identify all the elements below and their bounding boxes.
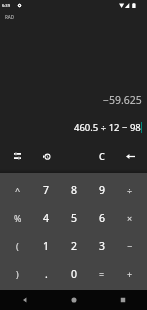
button[interactable]: × — [116, 204, 144, 232]
staticText: 460.5 ÷ 12 − 98 — [74, 121, 141, 134]
button[interactable]: 3 — [88, 232, 116, 260]
button[interactable]: 8 — [60, 175, 88, 204]
staticText: C — [99, 150, 105, 162]
button[interactable]: Recent apps — [98, 290, 147, 310]
button[interactable]: 9 — [88, 175, 116, 204]
staticText: RAD — [5, 14, 15, 20]
button[interactable]: ÷ — [116, 175, 144, 204]
button[interactable]: − — [116, 232, 144, 260]
button[interactable]: 1 — [32, 232, 60, 260]
staticText: . — [45, 267, 48, 281]
staticText: ^ — [15, 184, 21, 196]
button[interactable]: + — [116, 260, 144, 288]
staticText: = — [99, 268, 105, 280]
staticText: 5 — [71, 211, 78, 225]
staticText: 6:39 — [2, 3, 10, 8]
button[interactable]: Home — [49, 290, 98, 310]
button[interactable]: Scientific mode — [3, 144, 32, 168]
staticText: % — [14, 212, 22, 224]
button[interactable]: 5 — [60, 204, 88, 232]
button[interactable]: ( — [3, 232, 32, 260]
staticText: −59.625 — [103, 93, 142, 107]
staticText: ÷ — [127, 184, 133, 196]
button[interactable]: 4 — [32, 204, 60, 232]
button[interactable]: 0 — [60, 260, 88, 288]
button[interactable]: % — [3, 204, 32, 232]
button[interactable]: Back — [0, 290, 49, 310]
button[interactable]: C — [88, 144, 116, 168]
staticText: ( — [16, 240, 19, 252]
button[interactable]: 7 — [32, 175, 60, 204]
button[interactable]: History — [32, 144, 60, 168]
staticText: − — [127, 240, 133, 252]
staticText: 9 — [99, 183, 106, 197]
staticText: 6 — [99, 211, 106, 225]
staticText: + — [127, 268, 133, 280]
button[interactable]: ^ — [3, 175, 32, 204]
staticText: 4 — [43, 211, 50, 225]
button[interactable]: = — [88, 260, 116, 288]
staticText: ) — [16, 268, 19, 280]
button[interactable]: 6 — [88, 204, 116, 232]
staticText: 1 — [43, 239, 50, 253]
staticText: 8 — [71, 183, 78, 197]
staticText: 3 — [99, 239, 106, 253]
staticText: 0 — [71, 267, 78, 281]
staticText: 2 — [71, 239, 78, 253]
button[interactable]: . — [32, 260, 60, 288]
staticText: × — [127, 212, 133, 224]
button[interactable]: ) — [3, 260, 32, 288]
staticText: 7 — [43, 183, 50, 197]
button[interactable]: 2 — [60, 232, 88, 260]
button[interactable]: Backspace — [116, 144, 144, 168]
